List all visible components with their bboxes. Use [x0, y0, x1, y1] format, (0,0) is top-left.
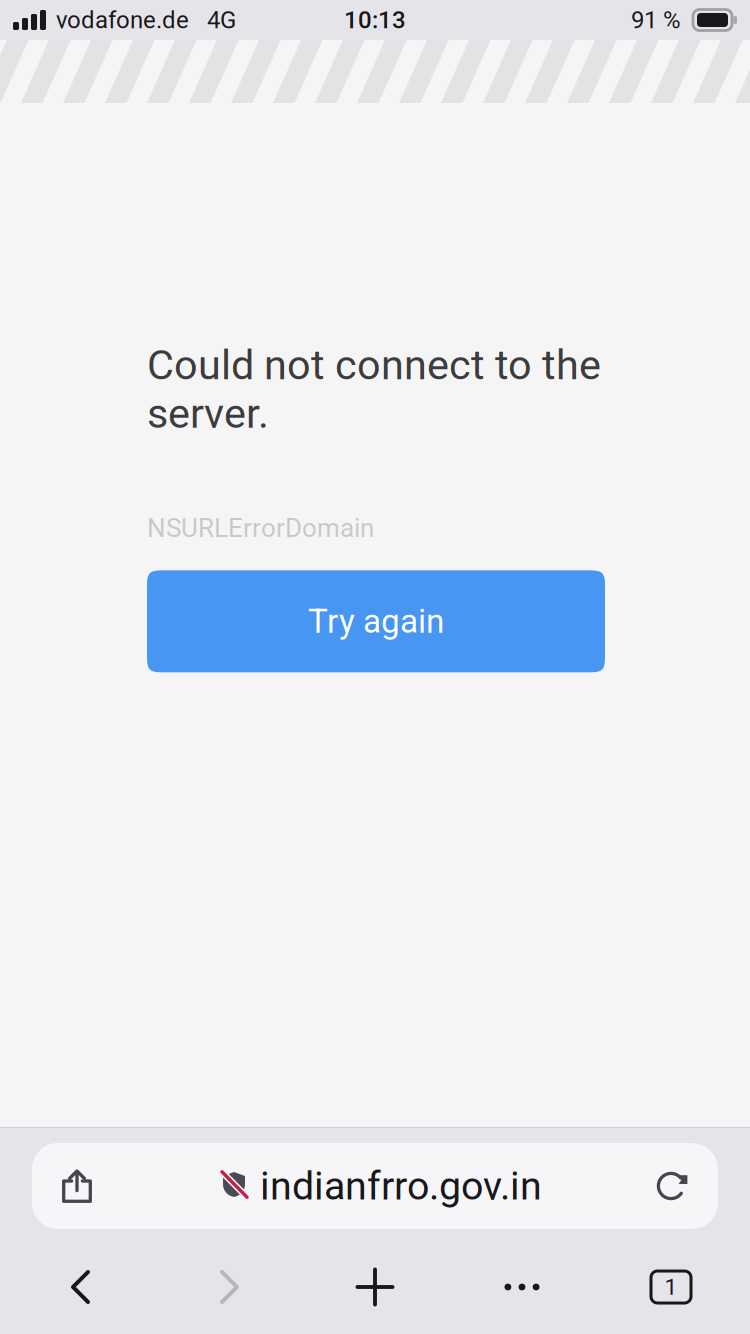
button[interactable]: Back — [0, 1257, 161, 1317]
button[interactable]: Forward — [161, 1257, 298, 1317]
staticText: vodafone.de — [56, 6, 189, 34]
staticText: Could not connect to the server. — [147, 341, 601, 438]
button[interactable]: New Tab — [298, 1257, 452, 1317]
button[interactable]: More — [452, 1257, 592, 1317]
staticText: Try again — [308, 602, 444, 641]
staticText: indianfrro.gov.in — [260, 1163, 542, 1209]
staticText: NSURLErrorDomain — [147, 513, 374, 543]
staticText: 4G — [207, 6, 236, 34]
staticText: 1 — [664, 1274, 677, 1300]
button[interactable]: Try again — [147, 570, 605, 672]
button[interactable]: Share — [32, 1143, 122, 1229]
button[interactable]: Reload — [628, 1143, 718, 1229]
button[interactable]: Tabs — [592, 1257, 750, 1317]
staticText: 10:13 — [344, 6, 406, 34]
staticText: 91 % — [631, 6, 681, 34]
